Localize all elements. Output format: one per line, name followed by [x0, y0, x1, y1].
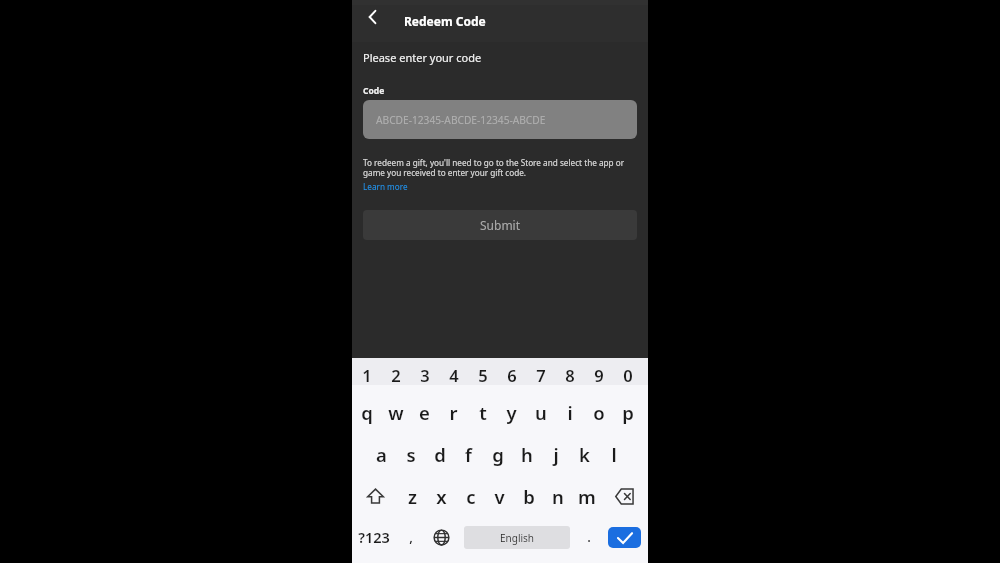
- button[interactable]: m: [572, 481, 601, 511]
- staticText: t: [479, 400, 487, 425]
- staticText: ?123: [358, 527, 390, 547]
- button[interactable]: n: [543, 481, 572, 511]
- staticText: 9: [594, 364, 604, 386]
- button[interactable]: English: [464, 526, 570, 549]
- button[interactable]: 4: [439, 360, 468, 390]
- button[interactable]: w: [381, 397, 410, 427]
- staticText: l: [611, 442, 617, 467]
- button[interactable]: u: [526, 397, 555, 427]
- button[interactable]: k: [570, 439, 599, 469]
- staticText: f: [465, 442, 472, 467]
- button[interactable]: ?123: [352, 522, 396, 552]
- button[interactable]: l: [599, 439, 628, 469]
- button[interactable]: o: [584, 397, 613, 427]
- button[interactable]: h: [512, 439, 541, 469]
- staticText: 8: [565, 364, 575, 386]
- staticText: h: [521, 442, 533, 467]
- staticText: ,: [409, 528, 413, 546]
- staticText: x: [436, 484, 447, 509]
- button[interactable]: j: [541, 439, 570, 469]
- staticText: u: [535, 400, 547, 425]
- staticText: To redeem a gift, you'll need to go to t…: [363, 157, 637, 179]
- staticText: n: [552, 484, 564, 509]
- button[interactable]: r: [439, 397, 468, 427]
- staticText: w: [388, 400, 404, 425]
- staticText: Submit: [480, 217, 521, 233]
- staticText: a: [376, 442, 387, 467]
- button[interactable]: ,: [396, 522, 426, 552]
- button[interactable]: 6: [497, 360, 526, 390]
- button[interactable]: 7: [526, 360, 555, 390]
- staticText: z: [408, 484, 417, 509]
- staticText: g: [492, 442, 504, 467]
- staticText: Redeem Code: [404, 13, 486, 29]
- button[interactable]: 5: [468, 360, 497, 390]
- staticText: 2: [391, 364, 401, 386]
- button[interactable]: s: [396, 439, 425, 469]
- button[interactable]: 9: [584, 360, 613, 390]
- button[interactable]: 1: [352, 360, 381, 390]
- staticText: c: [466, 484, 476, 509]
- button[interactable]: Done: [608, 527, 641, 548]
- button[interactable]: Shift: [352, 481, 398, 511]
- staticText: o: [593, 400, 605, 425]
- staticText: i: [567, 400, 573, 425]
- staticText: 3: [420, 364, 430, 386]
- staticText: 7: [536, 364, 546, 386]
- button[interactable]: Change language: [426, 522, 456, 552]
- staticText: 0: [623, 364, 633, 386]
- button[interactable]: p: [613, 397, 642, 427]
- staticText: 1: [362, 364, 372, 386]
- staticText: b: [523, 484, 535, 509]
- staticText: r: [449, 400, 458, 425]
- button[interactable]: 0: [613, 360, 642, 390]
- button[interactable]: b: [514, 481, 543, 511]
- staticText: ABCDE-12345-ABCDE-12345-ABCDE: [376, 113, 546, 127]
- button[interactable]: Backspace: [601, 481, 647, 511]
- button[interactable]: Back: [361, 6, 383, 28]
- button[interactable]: c: [456, 481, 485, 511]
- button[interactable]: d: [425, 439, 454, 469]
- staticText: Code: [363, 85, 385, 97]
- button[interactable]: a: [367, 439, 396, 469]
- button[interactable]: x: [427, 481, 456, 511]
- button[interactable]: g: [483, 439, 512, 469]
- button[interactable]: 2: [381, 360, 410, 390]
- button[interactable]: t: [468, 397, 497, 427]
- button[interactable]: Submit: [363, 210, 637, 240]
- staticText: k: [579, 442, 590, 467]
- staticText: English: [500, 531, 535, 545]
- staticText: m: [578, 484, 596, 509]
- button[interactable]: v: [485, 481, 514, 511]
- staticText: .: [587, 528, 591, 546]
- staticText: v: [494, 484, 505, 509]
- button[interactable]: q: [352, 397, 381, 427]
- staticText: e: [419, 400, 430, 425]
- staticText: 5: [478, 364, 488, 386]
- staticText: s: [406, 442, 416, 467]
- staticText: 4: [449, 364, 459, 386]
- button[interactable]: Learn more: [363, 181, 408, 192]
- staticText: 6: [507, 364, 517, 386]
- staticText: Please enter your code: [363, 50, 482, 65]
- button[interactable]: y: [497, 397, 526, 427]
- staticText: q: [361, 400, 373, 425]
- staticText: d: [434, 442, 446, 467]
- button[interactable]: ABCDE-12345-ABCDE-12345-ABCDE: [363, 100, 637, 139]
- staticText: p: [622, 400, 634, 425]
- button[interactable]: .: [570, 522, 608, 552]
- staticText: j: [553, 442, 559, 467]
- staticText: y: [506, 400, 517, 425]
- button[interactable]: 8: [555, 360, 584, 390]
- button[interactable]: 3: [410, 360, 439, 390]
- button[interactable]: i: [555, 397, 584, 427]
- button[interactable]: f: [454, 439, 483, 469]
- button[interactable]: e: [410, 397, 439, 427]
- button[interactable]: z: [398, 481, 427, 511]
